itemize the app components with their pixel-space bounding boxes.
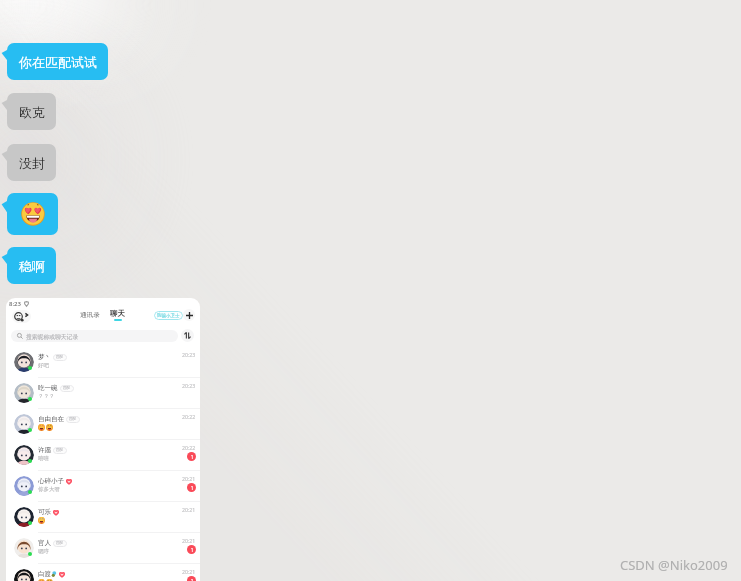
staticText: 通讯录 [80,311,100,319]
staticText: 20:22 [182,413,196,420]
button[interactable]: 白渡 [6,564,200,581]
staticText: 吃一碗 [38,384,58,392]
staticText: 匹配 [56,541,64,546]
staticText: 匹配 [69,417,77,422]
button[interactable]: Profile [12,310,31,323]
staticText: 20:21 [182,537,196,544]
staticText: 稳啊 [19,258,45,274]
staticText: 好吧 [38,362,49,369]
staticText: 匹配 [63,386,71,391]
staticText: 匹配 [56,355,64,360]
staticText: 欧克 [19,104,45,120]
button[interactable]: 搜索昵称或聊天记录 [11,330,178,342]
staticText: 白渡 [38,570,51,578]
staticText: 聊天 [110,309,125,318]
button[interactable]: Sort [181,329,194,342]
button[interactable]: 梦丶 [6,347,200,378]
staticText: 1 [190,453,194,460]
staticText: 匹配 [56,448,64,453]
staticText: 自由自在 [38,415,64,423]
button[interactable]: 心碎小子 [6,471,200,502]
button[interactable] [7,193,58,235]
button[interactable]: 稳啊 [7,247,56,284]
button[interactable]: 官人 [6,533,200,564]
staticText: 你多大呀 [38,486,60,493]
button[interactable]: 自由自在 [6,409,200,440]
staticText: 20:21 [182,506,196,513]
button[interactable]: 防骗小卫士 [154,311,183,320]
staticText: 1 [190,577,194,581]
button[interactable]: 没封 [7,144,56,181]
staticText: 20:22 [182,444,196,451]
staticText: CSDN @Niko2009 [620,556,728,574]
button[interactable]: 通讯录 [80,311,100,319]
button[interactable]: 吃一碗 [6,378,200,409]
staticText: 嘻嘻 [38,455,49,462]
staticText: ？？？ [38,393,55,400]
staticText: 8:23 [9,300,21,308]
button[interactable]: 欧克 [7,93,56,130]
staticText: 1 [190,484,194,491]
staticText: 可乐 [38,508,51,516]
staticText: 梦丶 [38,353,51,361]
staticText: 20:21 [182,568,196,575]
button[interactable]: 可乐 [6,502,200,533]
staticText: 没封 [19,155,45,171]
button[interactable]: 聊天 [110,309,125,321]
button[interactable]: 许愿 [6,440,200,471]
staticText: 防骗小卫士 [157,313,180,319]
staticText: 20:23 [182,351,196,358]
staticText: 1 [190,546,194,553]
staticText: 你在匹配试试 [19,54,97,70]
staticText: 20:23 [182,382,196,389]
button[interactable]: 你在匹配试试 [7,43,108,80]
staticText: 20:21 [182,475,196,482]
staticText: 嗯哼 [38,548,49,555]
staticText: 搜索昵称或聊天记录 [26,333,79,340]
staticText: 官人 [38,539,51,547]
button[interactable]: Add [183,309,195,321]
staticText: 许愿 [38,446,51,454]
staticText: 心碎小子 [38,477,64,485]
